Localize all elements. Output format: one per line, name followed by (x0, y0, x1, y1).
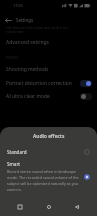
button[interactable]: Smart (0, 159, 97, 194)
button[interactable]: Advanced settings (0, 36, 97, 49)
staticText: PHOTO (6, 55, 18, 60)
button[interactable]: Back (68, 198, 86, 216)
staticText: Audio effects (33, 133, 65, 140)
staticText: Record stereo sound when in landscape mo… (7, 169, 79, 192)
button[interactable]: Portrait distortion correction (0, 77, 97, 90)
staticText: Advanced settings (6, 39, 49, 46)
staticText: Settings (16, 17, 34, 23)
button[interactable]: AI ultra clear mode (0, 90, 97, 103)
button[interactable]: Back (0, 12, 16, 28)
staticText: 17:06 (13, 3, 23, 8)
button[interactable]: Recents (11, 198, 29, 216)
staticText: AI ultra clear mode (6, 93, 50, 100)
staticText: Use features like zoom and grid in the v… (6, 25, 69, 34)
staticText: Shooting methods (6, 66, 49, 73)
button[interactable]: Standard (0, 145, 97, 159)
staticText: Standard (7, 149, 27, 155)
button[interactable]: Home (40, 198, 58, 216)
staticText: Smart (7, 161, 20, 167)
staticText: Portrait distortion correction (6, 80, 72, 87)
button[interactable]: Shooting methods (0, 63, 97, 76)
